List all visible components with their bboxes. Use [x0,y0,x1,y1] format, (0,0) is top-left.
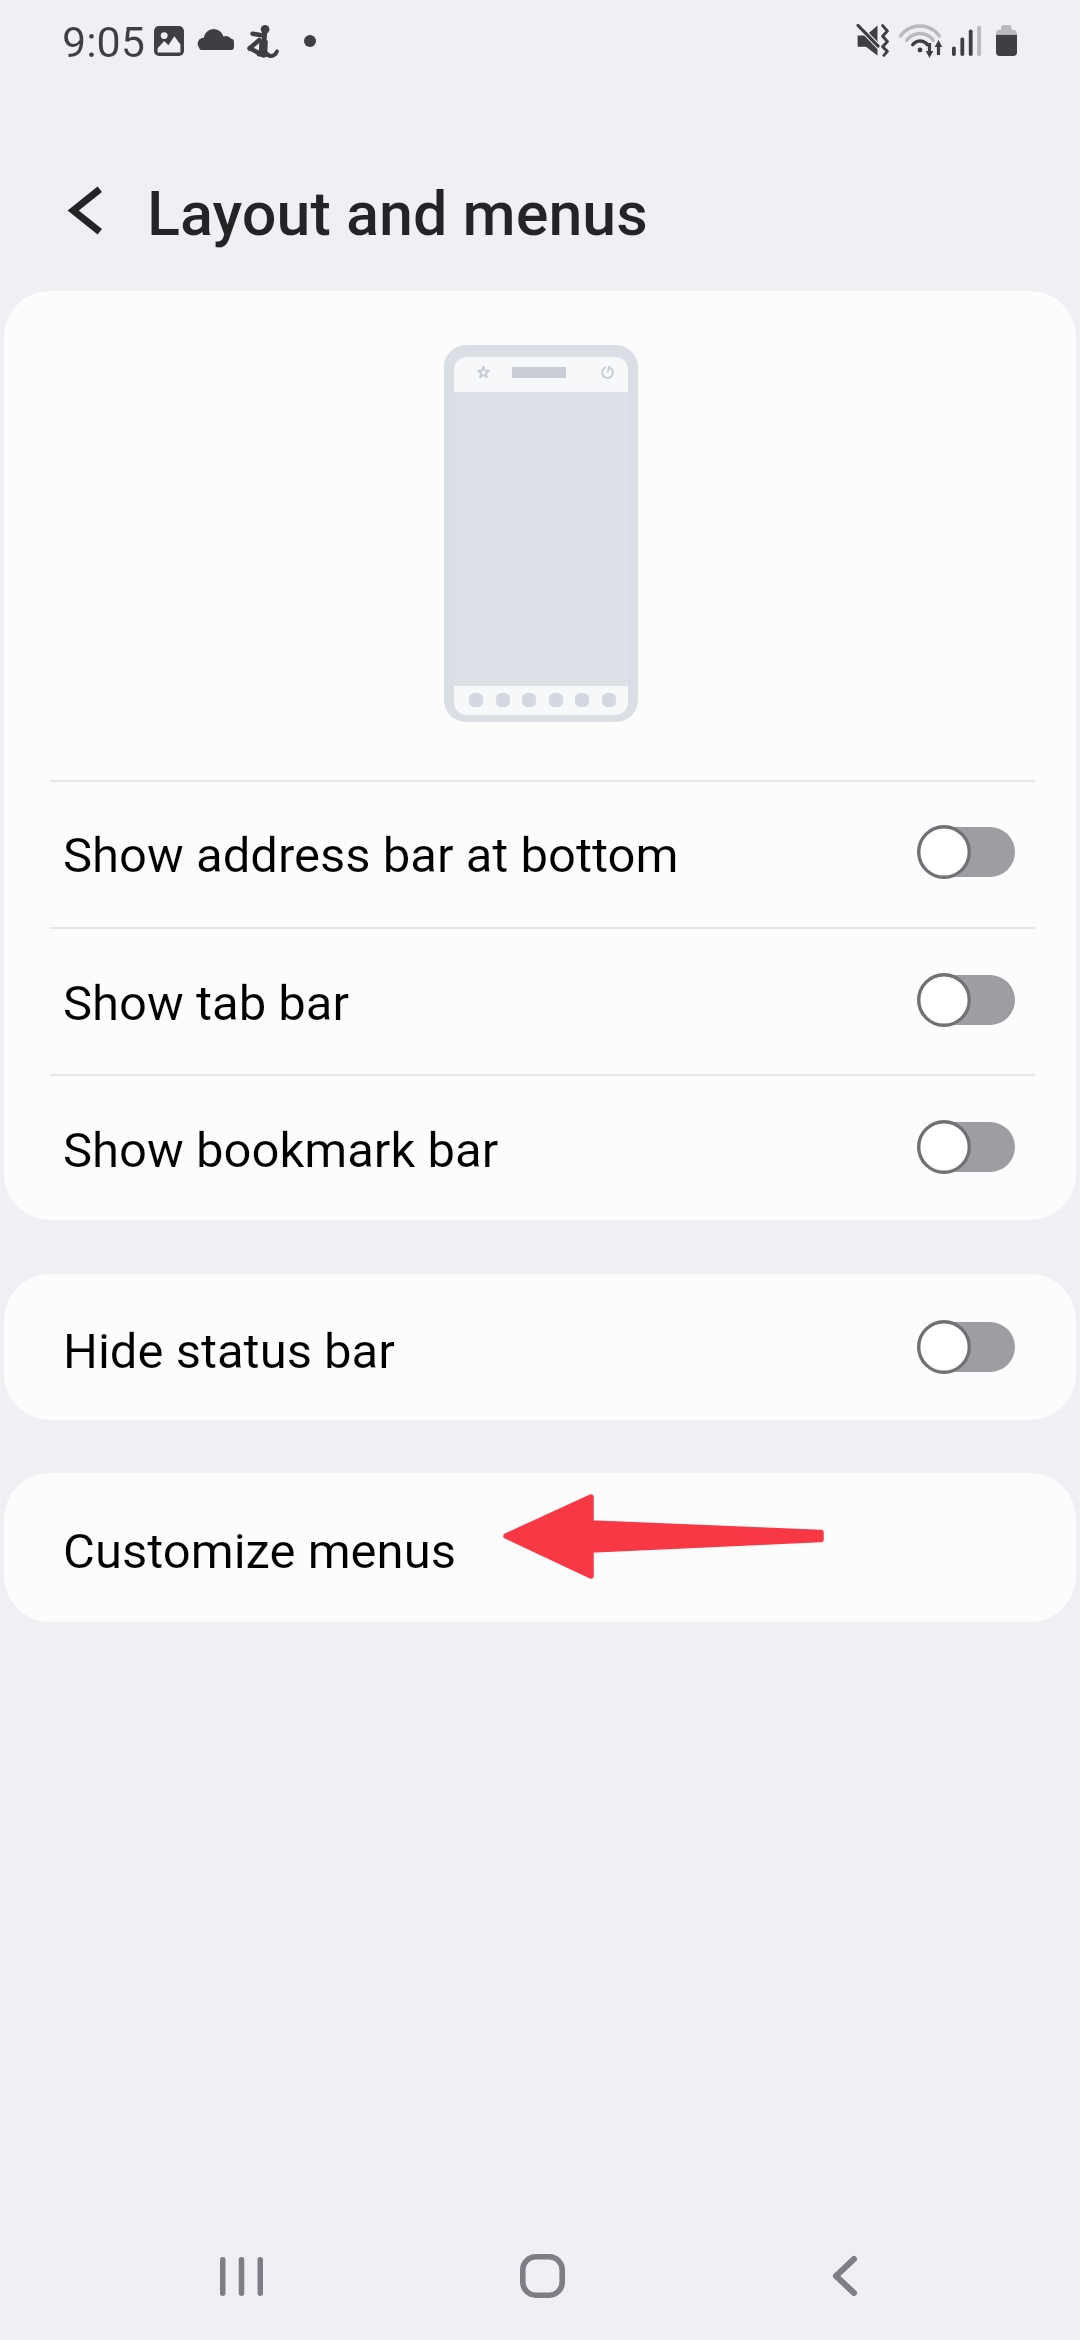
staticText: 9:05 [62,17,145,67]
button[interactable]: Navigate up [44,168,128,252]
staticText: Layout and menus [147,178,648,249]
button[interactable]: Show address bar at bottom [4,778,1076,925]
button[interactable]: Show tab bar [4,926,1076,1073]
button[interactable]: Show bookmark bar [4,1073,1076,1220]
staticText: Show address bar at bottom [63,827,679,884]
staticText: Show bookmark bar [63,1122,499,1179]
button[interactable]: Hide status bar [4,1274,1076,1420]
button[interactable]: Show tab bar switch, off [916,971,1016,1029]
button[interactable]: Show address bar at bottom switch, off [916,823,1016,881]
button[interactable]: Back [785,2216,905,2336]
button[interactable]: Home [482,2216,602,2336]
button[interactable]: Customize menus [4,1473,1076,1622]
staticText: Customize menus [63,1523,456,1580]
staticText: Hide status bar [63,1323,395,1380]
button[interactable]: Hide status bar switch, off [916,1318,1016,1376]
button[interactable]: Show bookmark bar switch, off [916,1118,1016,1176]
button[interactable]: Recent apps [181,2216,301,2336]
staticText: Show tab bar [63,975,350,1032]
